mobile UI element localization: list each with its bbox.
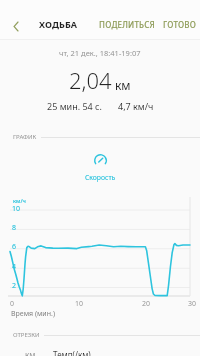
staticText: 25 мин. 54 с. — [47, 100, 102, 112]
staticText: 20 — [142, 299, 151, 309]
staticText: 6 — [12, 242, 17, 252]
staticText: ГРАФИК — [13, 133, 37, 141]
staticText: 10 — [75, 299, 84, 309]
staticText: Время (мин.) — [11, 309, 55, 319]
staticText: ХОДЬБА — [39, 18, 78, 30]
staticText: чт, 21 дек., 18:41-19:07 — [59, 48, 141, 58]
staticText: ПОДЕЛИТЬСЯ — [99, 19, 155, 30]
button[interactable]: Скорость — [75, 154, 126, 182]
staticText: км/ч — [13, 197, 26, 204]
staticText: ГОТОВО — [163, 19, 197, 30]
staticText: Скорость — [85, 173, 116, 182]
staticText: 4 — [12, 262, 17, 272]
staticText: 4,7 км/ч — [118, 100, 154, 112]
button[interactable]: ГОТОВО — [163, 19, 197, 30]
staticText: 0 — [10, 299, 15, 309]
other: Скорость — [94, 154, 107, 167]
button[interactable]: ХОДЬБА — [39, 18, 78, 30]
button[interactable]: Назад — [3, 14, 27, 38]
staticText: 30 — [188, 299, 197, 309]
staticText: ОТРЕЗКИ — [13, 331, 40, 339]
staticText: км — [25, 349, 36, 356]
staticText: 8 — [12, 223, 17, 233]
staticText: 2 — [12, 281, 17, 291]
staticText: Темп(/км) — [53, 349, 91, 356]
staticText: км — [115, 77, 131, 93]
staticText: 2,04 — [69, 65, 112, 95]
button[interactable]: ПОДЕЛИТЬСЯ — [99, 19, 155, 30]
staticText: 10 — [12, 204, 21, 214]
